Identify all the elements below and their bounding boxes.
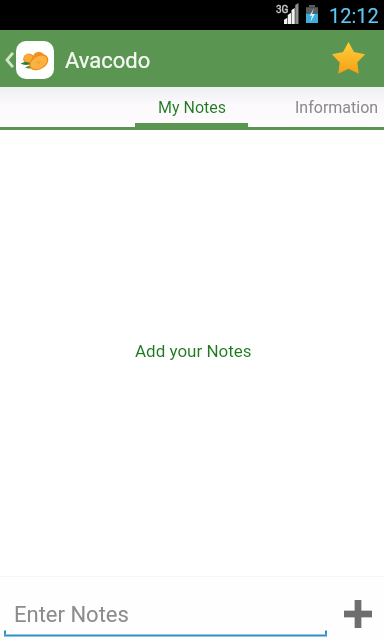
button[interactable]: My Notes — [136, 86, 249, 129]
staticText: 12:12 — [329, 4, 379, 27]
button[interactable]: Back — [0, 32, 18, 88]
staticText: Enter Notes — [14, 602, 129, 628]
staticText: My Notes — [158, 98, 227, 117]
staticText: Avacodo — [65, 48, 151, 74]
staticText: Add your Notes — [135, 341, 252, 361]
button[interactable]: Add note — [331, 587, 384, 640]
staticText: Information — [295, 98, 379, 117]
button[interactable]: Favorite — [328, 38, 368, 78]
button[interactable]: Information — [272, 86, 384, 129]
staticText: 3G — [276, 4, 289, 16]
